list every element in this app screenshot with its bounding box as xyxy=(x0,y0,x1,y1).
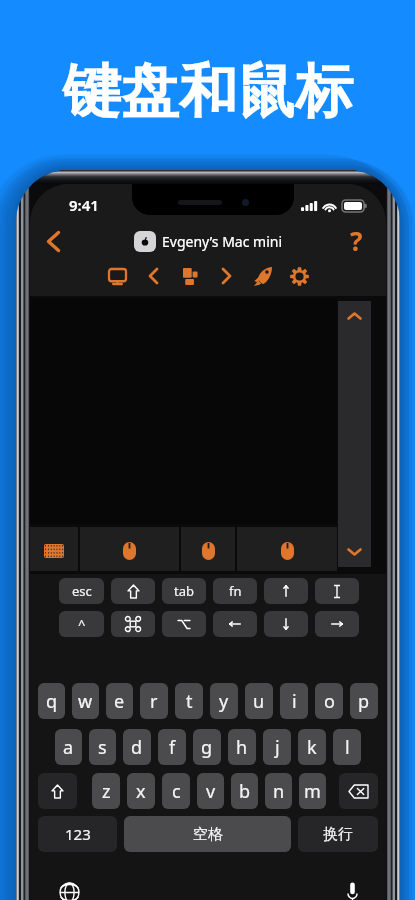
button[interactable]: t xyxy=(175,683,203,719)
button[interactable]: i xyxy=(280,683,308,719)
button[interactable]: Right xyxy=(315,611,359,637)
button[interactable]: c xyxy=(162,773,190,809)
button[interactable]: e xyxy=(106,683,133,719)
staticText: d xyxy=(131,735,143,760)
button[interactable]: Option xyxy=(162,611,206,637)
button[interactable]: Shift xyxy=(111,578,155,604)
button[interactable]: tab xyxy=(162,578,206,604)
staticText: 键盘和鼠标 xyxy=(63,55,353,128)
staticText: o xyxy=(324,689,335,714)
staticText: fn xyxy=(229,582,242,600)
button[interactable]: ^ xyxy=(59,611,104,637)
button[interactable]: x xyxy=(127,773,155,809)
button[interactable]: h xyxy=(228,729,256,765)
button[interactable]: Help xyxy=(326,221,386,261)
button[interactable]: b xyxy=(231,773,258,809)
button[interactable]: Left click xyxy=(80,527,179,571)
button[interactable]: l xyxy=(333,729,361,765)
button[interactable]: Middle click xyxy=(181,527,235,571)
staticText: 123 xyxy=(65,824,91,844)
staticText: g xyxy=(201,735,213,760)
button[interactable]: 123 xyxy=(38,816,117,852)
button[interactable]: Apps xyxy=(175,261,205,291)
button[interactable]: fn xyxy=(213,578,257,604)
button[interactable]: Down xyxy=(264,611,308,637)
staticText: w xyxy=(78,689,93,714)
staticText: s xyxy=(98,735,107,760)
staticText: y xyxy=(219,689,229,714)
button[interactable]: Right click xyxy=(237,527,337,571)
staticText: b xyxy=(239,779,251,804)
button[interactable]: f xyxy=(158,729,186,765)
button[interactable]: s xyxy=(89,729,116,765)
button[interactable]: o xyxy=(315,683,343,719)
staticText: c xyxy=(172,779,181,804)
button[interactable]: Scroll down xyxy=(338,537,371,567)
button[interactable]: Backspace xyxy=(339,773,378,809)
staticText: t xyxy=(186,689,193,714)
button[interactable]: y xyxy=(210,683,238,719)
button[interactable]: Left xyxy=(213,611,257,637)
button[interactable]: z xyxy=(92,773,120,809)
button[interactable]: Language xyxy=(51,875,87,900)
staticText: ^ xyxy=(78,615,86,633)
staticText: q xyxy=(46,689,58,714)
button[interactable]: w xyxy=(72,683,99,719)
staticText: tab xyxy=(174,582,194,600)
button[interactable]: Shift xyxy=(38,773,77,809)
button[interactable]: Next xyxy=(211,261,241,291)
staticText: u xyxy=(253,689,265,714)
button[interactable]: u xyxy=(245,683,273,719)
button[interactable]: 换行 xyxy=(298,816,378,852)
button[interactable]: d xyxy=(123,729,151,765)
staticText: l xyxy=(345,735,350,760)
staticText: k xyxy=(307,735,317,760)
button[interactable]: q xyxy=(38,683,65,719)
button[interactable]: p xyxy=(350,683,378,719)
staticText: r xyxy=(150,689,158,714)
staticText: 空格 xyxy=(193,825,223,844)
button[interactable]: Dictation xyxy=(334,875,370,900)
button[interactable]: k xyxy=(298,729,326,765)
staticText: f xyxy=(169,735,176,760)
button[interactable]: Cursor xyxy=(315,578,359,604)
staticText: z xyxy=(102,779,111,804)
button[interactable]: a xyxy=(55,729,82,765)
staticText: n xyxy=(273,779,285,804)
staticText: j xyxy=(275,735,280,760)
button[interactable]: Command xyxy=(111,611,155,637)
staticText: h xyxy=(236,735,248,760)
button[interactable]: n xyxy=(265,773,292,809)
button[interactable]: esc xyxy=(59,578,104,604)
staticText: e xyxy=(114,689,125,714)
button[interactable]: Scroll up xyxy=(338,301,371,331)
staticText: 换行 xyxy=(323,825,353,844)
button[interactable]: Display xyxy=(102,261,132,291)
button[interactable]: Up xyxy=(264,578,308,604)
staticText: x xyxy=(136,779,146,804)
staticText: v xyxy=(206,779,216,804)
staticText: p xyxy=(358,689,370,714)
button[interactable]: Settings xyxy=(284,261,314,291)
button[interactable]: 空格 xyxy=(124,816,291,852)
button[interactable]: Keyboard xyxy=(30,527,78,571)
button[interactable]: Back xyxy=(30,221,76,261)
staticText: 9:41 xyxy=(69,195,99,215)
button[interactable]: v xyxy=(197,773,224,809)
button[interactable]: m xyxy=(299,773,326,809)
staticText: esc xyxy=(72,582,92,600)
staticText: ? xyxy=(350,223,363,258)
button[interactable]: r xyxy=(140,683,168,719)
button[interactable]: j xyxy=(263,729,291,765)
button[interactable]: Launch xyxy=(248,261,278,291)
staticText: m xyxy=(304,779,321,804)
button[interactable]: Previous xyxy=(138,261,168,291)
staticText: a xyxy=(63,735,74,760)
staticText: Evgeny’s Mac mini xyxy=(162,232,283,251)
staticText: i xyxy=(292,689,297,714)
button[interactable]: g xyxy=(193,729,221,765)
